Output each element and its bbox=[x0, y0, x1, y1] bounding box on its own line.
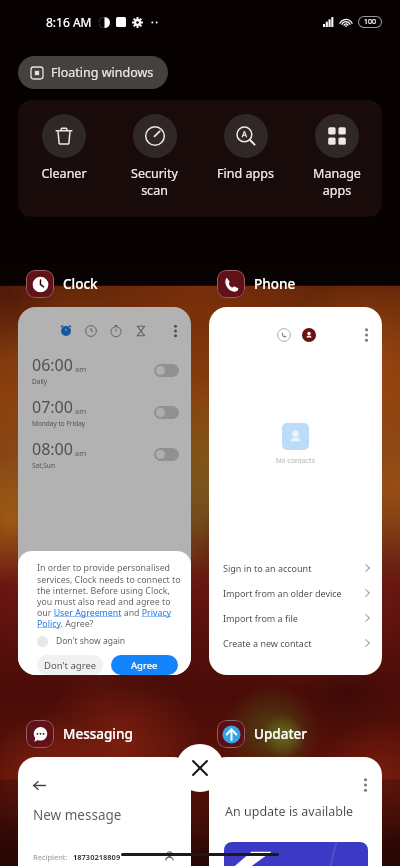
button[interactable]: 06:00 bbox=[18, 307, 191, 675]
button[interactable]: Import from an older device bbox=[209, 580, 382, 605]
staticText: Don't agree bbox=[44, 659, 97, 672]
button[interactable]: An update is available bbox=[209, 757, 382, 866]
button[interactable]: Clock bbox=[18, 269, 98, 299]
button[interactable]: Sign in to an account bbox=[209, 555, 382, 580]
staticText: No contacts bbox=[276, 456, 315, 466]
staticText: 06:00 bbox=[32, 354, 73, 376]
staticText: am bbox=[75, 448, 87, 458]
staticText: Recipient: bbox=[33, 852, 68, 862]
button[interactable]: Agree bbox=[111, 655, 178, 675]
staticText: An update is available bbox=[225, 803, 354, 820]
staticText: Messaging bbox=[63, 725, 133, 743]
staticText: 07:00 bbox=[32, 396, 73, 418]
button[interactable]: Security scan bbox=[109, 114, 200, 198]
button[interactable]: Import from a file bbox=[209, 605, 382, 630]
staticText: Sign in to an account bbox=[223, 562, 312, 574]
button[interactable]: Find apps bbox=[200, 114, 291, 182]
staticText: Import from a file bbox=[223, 612, 298, 624]
button[interactable]: Don't show again bbox=[37, 635, 126, 647]
staticText: Import from an older device bbox=[223, 587, 342, 599]
button[interactable]: Phone bbox=[209, 269, 296, 299]
staticText: Monday to Friday bbox=[32, 419, 86, 428]
staticText: Find apps bbox=[217, 165, 274, 182]
staticText: New message bbox=[33, 806, 122, 824]
staticText: Clock bbox=[63, 275, 98, 293]
staticText: Create a new contact bbox=[223, 637, 312, 649]
staticText: 8:16 AM bbox=[46, 14, 92, 30]
staticText: 100 bbox=[364, 17, 377, 27]
button[interactable]: Cleaner bbox=[18, 114, 109, 182]
staticText: Agree bbox=[131, 659, 158, 672]
staticText: Sat,Sun bbox=[32, 461, 55, 470]
staticText: am bbox=[75, 406, 87, 416]
button[interactable]: Messaging bbox=[18, 719, 133, 749]
staticText: Don't show again bbox=[56, 635, 126, 647]
staticText: Cleaner bbox=[41, 165, 87, 182]
staticText: Updater bbox=[254, 725, 308, 743]
button[interactable]: No contacts bbox=[209, 307, 382, 675]
button[interactable]: Floating windows bbox=[18, 56, 168, 89]
button[interactable]: Manage apps bbox=[291, 114, 382, 198]
button[interactable]: New message bbox=[18, 757, 191, 866]
staticText: Floating windows bbox=[51, 64, 154, 81]
button[interactable]: Create a new contact bbox=[209, 630, 382, 655]
staticText: am bbox=[75, 364, 87, 374]
staticText: Manage apps bbox=[313, 165, 361, 198]
staticText: Daily bbox=[32, 377, 48, 386]
button[interactable]: Updater bbox=[209, 719, 308, 749]
button[interactable]: Close all bbox=[176, 744, 224, 792]
staticText: 18730218809 bbox=[73, 852, 121, 862]
button[interactable]: Don't agree bbox=[37, 655, 103, 675]
staticText: Phone bbox=[254, 275, 296, 293]
staticText: 08:00 bbox=[32, 438, 73, 460]
staticText: In order to provide personalised service… bbox=[37, 562, 182, 629]
staticText: Security scan bbox=[131, 165, 178, 198]
